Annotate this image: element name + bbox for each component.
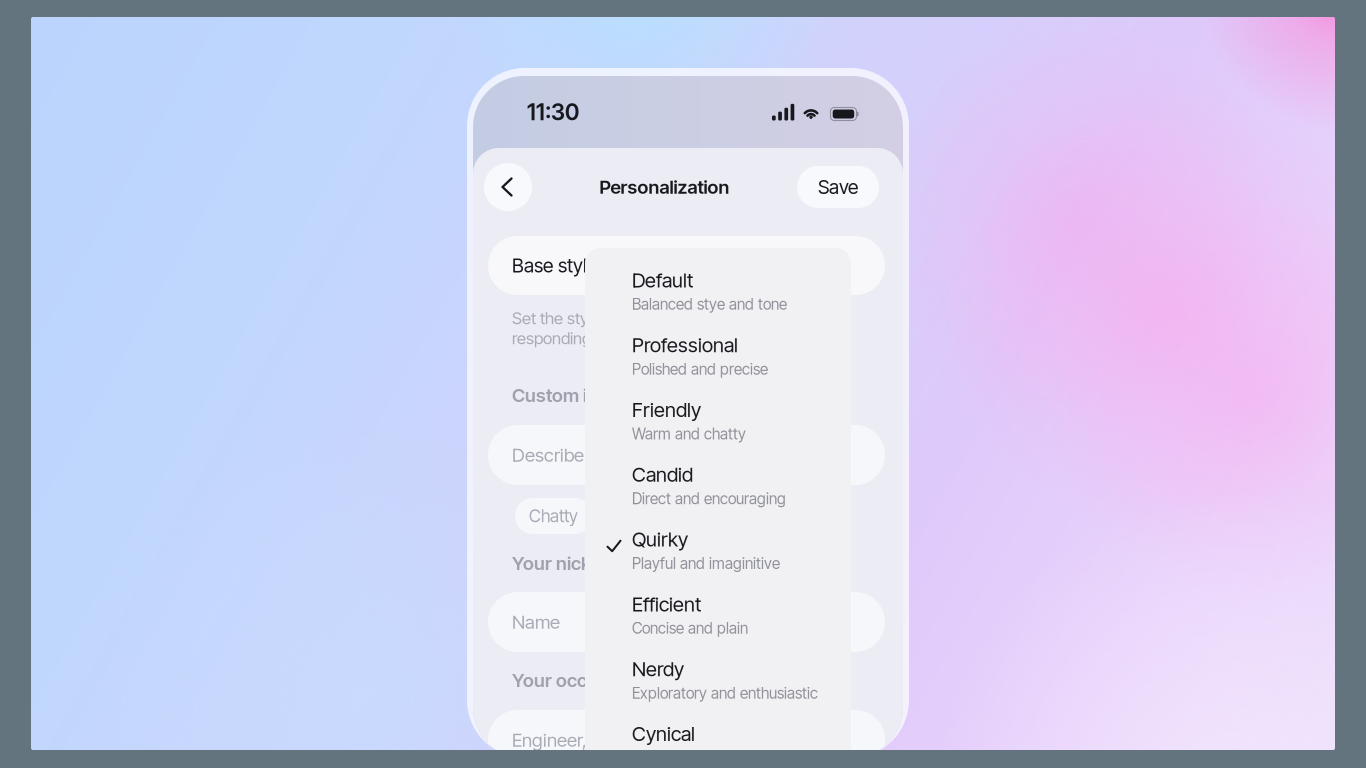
staticText: Encouraging	[688, 505, 782, 526]
staticText: Concise and plain	[632, 619, 748, 638]
staticText: Direct and encouraging	[632, 489, 786, 508]
button[interactable]: Default	[585, 248, 851, 313]
button[interactable]: Save	[797, 166, 879, 208]
staticText: Describe how the assistant should act	[512, 444, 816, 466]
button[interactable]: Engineer, student, etc.	[473, 710, 885, 768]
staticText: Your nickname	[512, 552, 638, 575]
staticText: Default	[632, 268, 693, 292]
button[interactable]: Efficient	[585, 572, 851, 637]
staticText: Set the style the assistant uses when re…	[512, 308, 777, 348]
button[interactable]: Cynical	[585, 702, 851, 766]
button[interactable]: Witty	[600, 498, 666, 534]
button[interactable]: Back	[484, 163, 532, 211]
staticText: Playful and imaginitive	[632, 554, 780, 573]
staticText: Engineer, student, etc.	[512, 729, 691, 751]
staticText: Balanced stye and tone	[632, 295, 787, 314]
staticText: Sharp and skeptical	[632, 749, 762, 767]
staticText: Personalization	[599, 176, 729, 198]
button[interactable]: Candid	[585, 442, 851, 507]
staticText: Name	[512, 611, 560, 633]
button[interactable]: Name	[473, 592, 885, 652]
staticText: Chatty	[529, 505, 578, 526]
staticText: Save	[818, 175, 858, 199]
button[interactable]: Friendly	[585, 378, 851, 442]
staticText: Cynical	[632, 722, 695, 746]
staticText: Candid	[632, 462, 693, 487]
button[interactable]: Encouraging	[674, 498, 796, 534]
staticText: Base style	[512, 254, 597, 277]
staticText: Efficient	[632, 592, 701, 616]
staticText: Nerdy	[632, 657, 684, 681]
staticText: Polished and precise	[632, 360, 768, 378]
staticText: Friendly	[632, 398, 701, 422]
staticText: Warm and chatty	[632, 425, 746, 443]
button[interactable]: Base style	[473, 236, 885, 295]
staticText: Exploratory and enthusiastic	[632, 684, 818, 702]
staticText: Custom instructions	[512, 384, 684, 407]
staticText: 11:30	[527, 98, 579, 126]
button[interactable]: Professional	[585, 313, 851, 378]
staticText: Quirky	[632, 527, 688, 551]
button[interactable]: Nerdy	[585, 637, 851, 702]
button[interactable]: Chatty	[515, 498, 592, 534]
staticText: Professional	[632, 333, 738, 357]
button[interactable]: Quirky	[585, 507, 851, 572]
staticText: Your occupation	[512, 669, 651, 692]
button[interactable]: Describe how the assistant should act	[473, 425, 885, 485]
